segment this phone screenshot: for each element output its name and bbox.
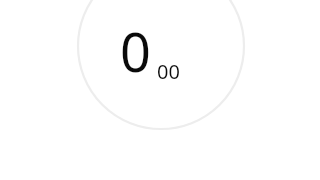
staticText: 00 xyxy=(157,58,180,85)
staticText: 0 xyxy=(120,14,151,88)
button[interactable]: 0 xyxy=(120,14,180,88)
button[interactable]: Start or pause timer xyxy=(0,0,320,180)
